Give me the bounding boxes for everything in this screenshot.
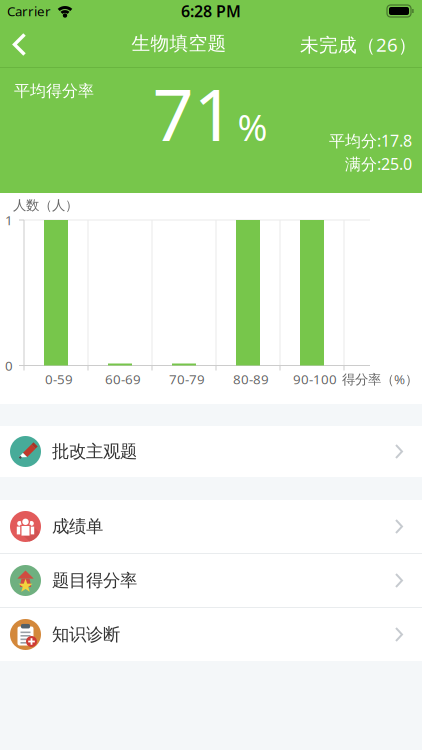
staticText: 70-79 — [169, 370, 205, 388]
staticText: 成绩单 — [52, 516, 103, 537]
button[interactable]: Back — [0, 22, 37, 66]
staticText: Carrier — [7, 2, 51, 20]
button[interactable]: 未完成（26） — [300, 22, 422, 67]
staticText: 6:28 PM — [181, 0, 241, 22]
staticText: 批改主观题 — [52, 441, 137, 462]
staticText: 90-100 — [293, 370, 337, 388]
staticText: 80-89 — [233, 370, 269, 388]
staticText: 1 — [5, 211, 13, 229]
staticText: 0 — [5, 357, 13, 374]
button[interactable]: 成绩单 — [0, 500, 422, 553]
staticText: 题目得分率 — [52, 570, 137, 591]
staticText: 未完成（26） — [300, 32, 417, 57]
button[interactable]: 批改主观题 — [0, 426, 422, 477]
staticText: 满分:25.0 — [345, 153, 412, 174]
button[interactable]: 知识诊断 — [0, 608, 422, 661]
staticText: 60-69 — [105, 370, 141, 388]
staticText: % — [237, 103, 267, 151]
staticText: 知识诊断 — [52, 624, 120, 645]
staticText: 0-59 — [45, 370, 73, 388]
staticText: 得分率（%） — [342, 370, 418, 388]
button[interactable]: 题目得分率 — [0, 554, 422, 607]
staticText: 平均分:17.8 — [329, 130, 412, 151]
staticText: 人数（人） — [13, 197, 78, 213]
staticText: 71 — [152, 65, 234, 161]
staticText: 平均得分率 — [14, 81, 94, 101]
staticText: 生物填空题 — [131, 32, 226, 55]
